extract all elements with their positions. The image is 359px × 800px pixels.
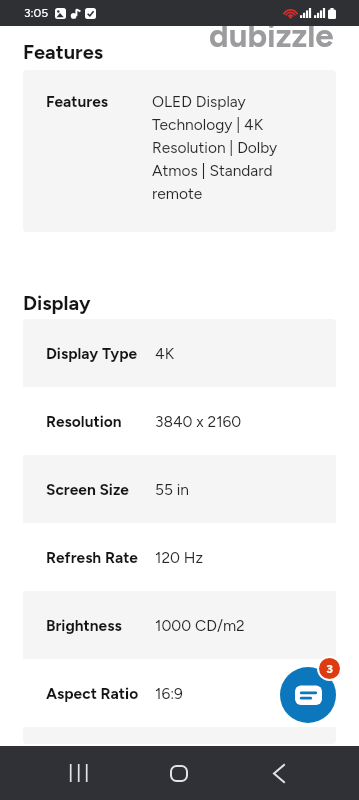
button[interactable]: Recent apps bbox=[44, 746, 112, 800]
button[interactable]: Aspect Ratio bbox=[23, 659, 336, 727]
staticText: 55 in bbox=[155, 480, 189, 499]
staticText: Display bbox=[23, 291, 91, 315]
staticText: 16:9 bbox=[155, 684, 183, 703]
staticText: 3 bbox=[326, 662, 333, 676]
staticText: 3:05 bbox=[24, 6, 49, 20]
button[interactable]: Refresh Rate bbox=[23, 523, 336, 591]
staticText: OLED Display Technology | 4K Resolution … bbox=[152, 92, 289, 203]
button[interactable]: Home bbox=[145, 746, 213, 800]
staticText: Display Type bbox=[46, 344, 155, 363]
staticText: Screen Size bbox=[46, 480, 155, 499]
staticText: Aspect Ratio bbox=[46, 684, 155, 703]
button[interactable]: Back bbox=[245, 746, 313, 800]
button[interactable]: Screen Size bbox=[23, 455, 336, 523]
staticText: Features bbox=[23, 40, 104, 64]
button[interactable]: Display Type bbox=[23, 319, 336, 387]
staticText: 120 Hz bbox=[155, 548, 204, 567]
staticText: dubizzle bbox=[209, 16, 334, 56]
staticText: 3840 x 2160 bbox=[155, 412, 242, 431]
staticText: Brightness bbox=[46, 616, 155, 635]
staticText: Resolution bbox=[46, 412, 155, 431]
button[interactable]: Resolution bbox=[23, 387, 336, 455]
staticText: 1000 CD/m2 bbox=[155, 616, 245, 635]
staticText: Refresh Rate bbox=[46, 548, 155, 567]
button[interactable]: Open chat bbox=[280, 667, 336, 723]
staticText: Features bbox=[46, 92, 152, 111]
button[interactable]: Brightness bbox=[23, 591, 336, 659]
staticText: 4K bbox=[155, 344, 175, 363]
